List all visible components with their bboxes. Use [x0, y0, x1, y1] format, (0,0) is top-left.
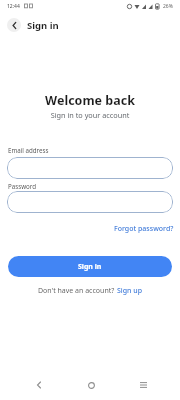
staticText: Email address [8, 146, 49, 154]
staticText: Sign in [27, 19, 59, 32]
button[interactable] [7, 18, 21, 32]
staticText: 12:44 [7, 3, 20, 10]
button[interactable]: Forgot password? [114, 224, 174, 234]
button[interactable]: Sign in [8, 256, 172, 277]
staticText: Sign in [78, 262, 102, 272]
staticText: Sign up [117, 286, 143, 296]
button[interactable] [7, 157, 173, 179]
button[interactable] [134, 376, 152, 394]
button[interactable] [82, 376, 100, 394]
staticText: 26% [163, 3, 173, 10]
staticText: Don't have an account? [38, 286, 117, 296]
button[interactable]: Sign up [117, 286, 143, 296]
staticText: Password [8, 182, 36, 190]
button[interactable] [7, 191, 173, 213]
button[interactable] [30, 376, 48, 394]
staticText: Sign in to your account [0, 110, 180, 120]
staticText: Welcome back [0, 92, 180, 109]
staticText: Forgot password? [114, 224, 174, 234]
